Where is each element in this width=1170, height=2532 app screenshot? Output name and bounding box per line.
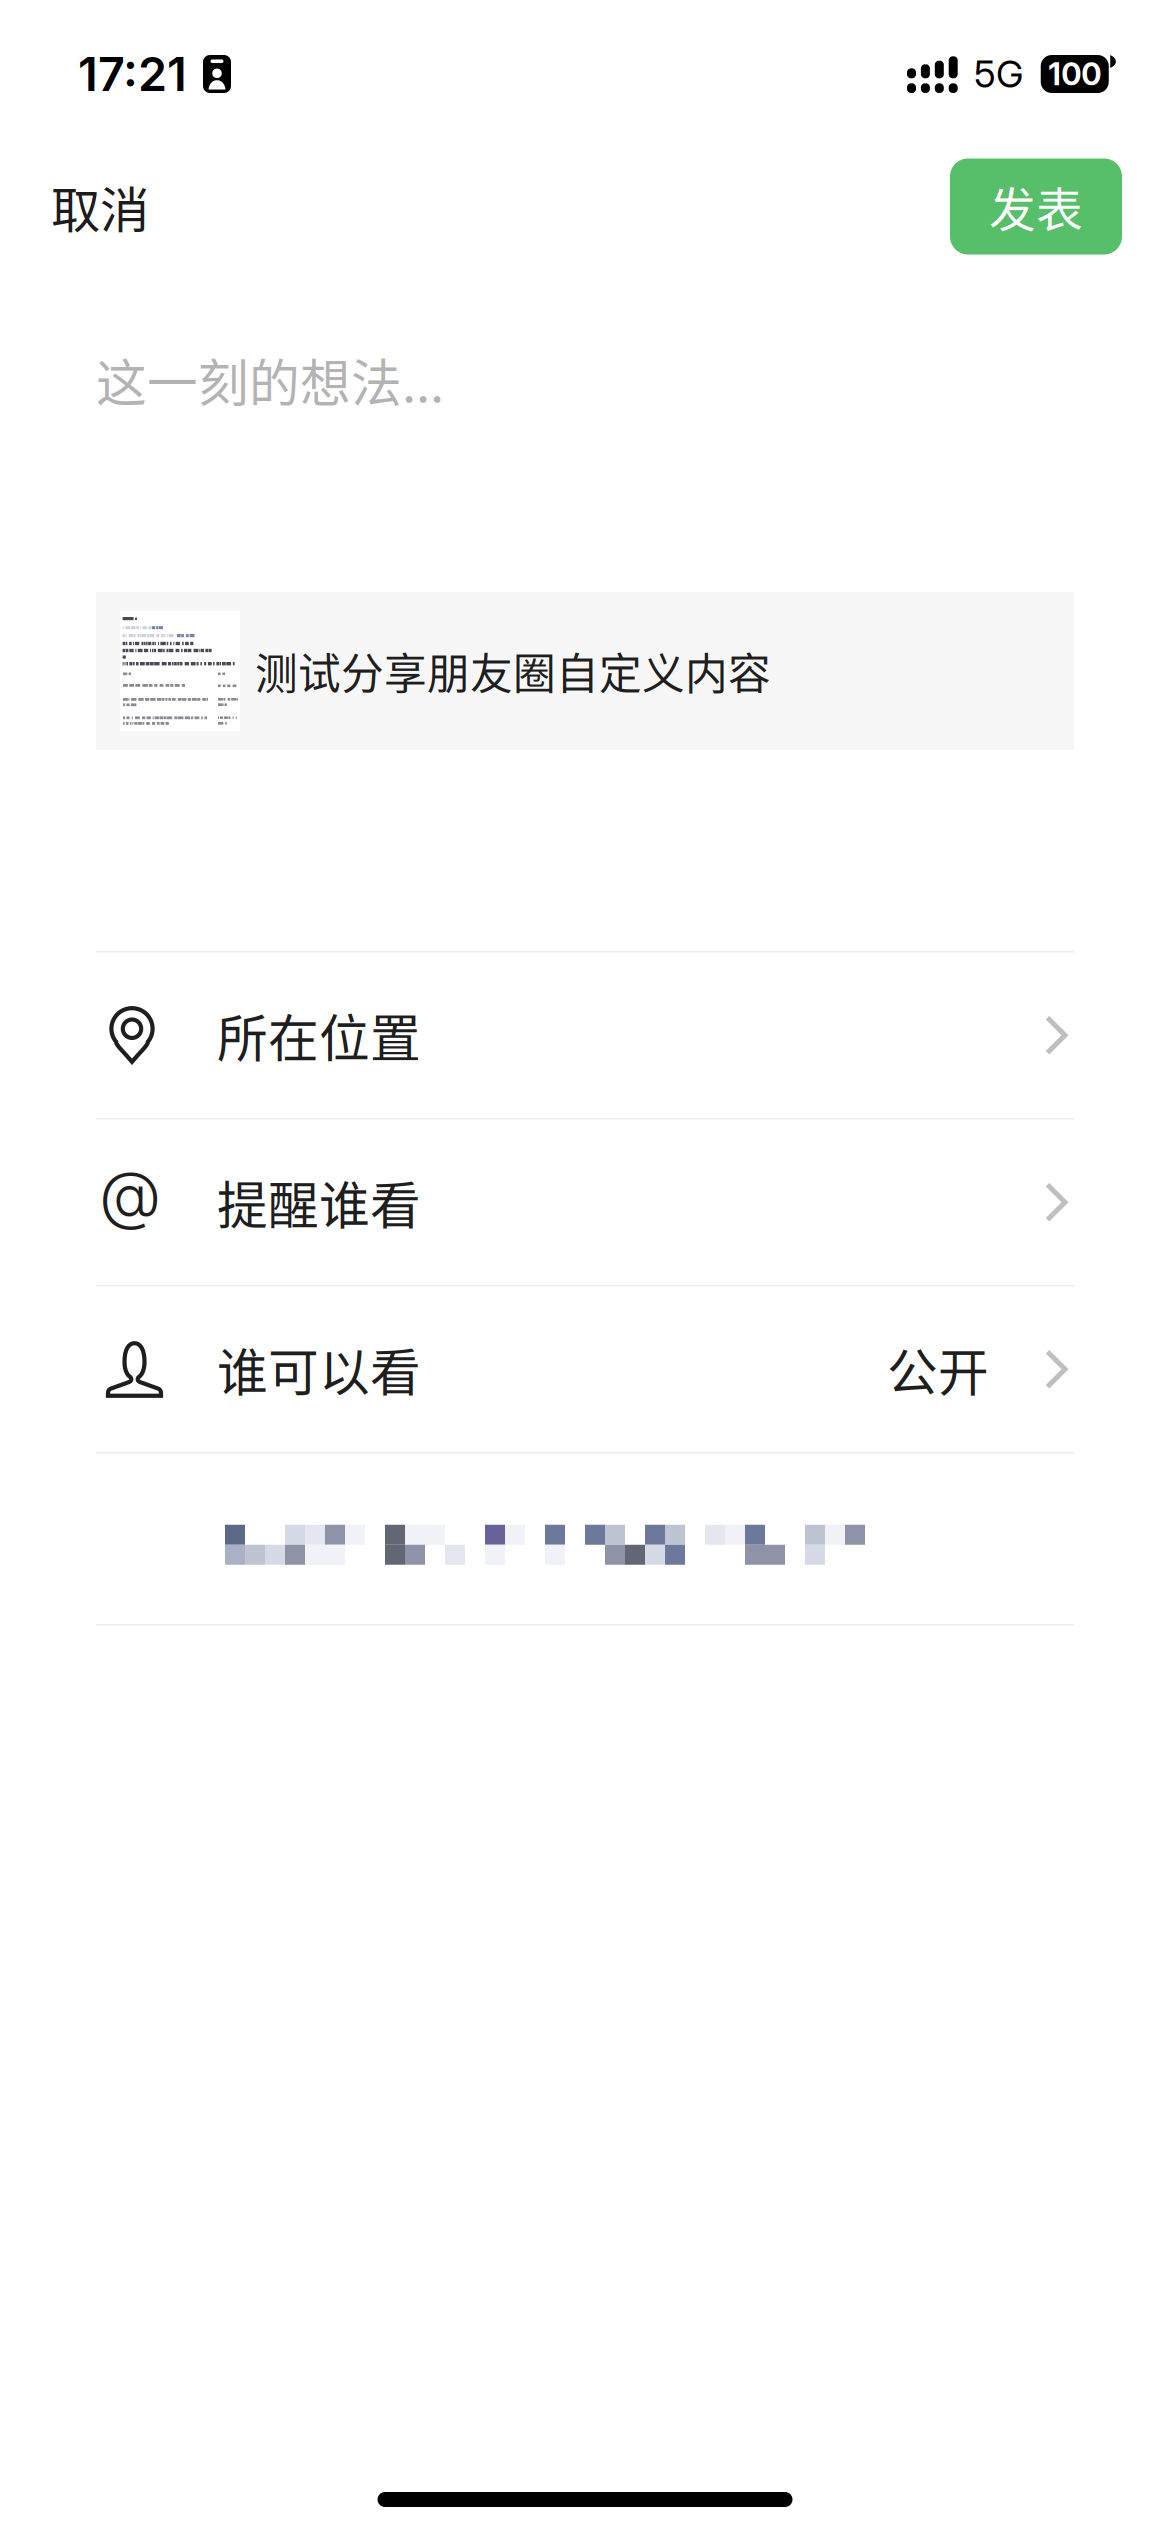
staticText: 100 [1048,55,1101,92]
button[interactable]: @ [0,1119,1170,1285]
button[interactable]: 所在位置 [0,952,1170,1118]
button[interactable]: 谁可以看 [0,1286,1170,1452]
button[interactable]: 这一刻的想法... [0,265,1170,495]
staticText: @ [99,1155,161,1233]
button[interactable]: 发表 [950,158,1122,254]
button[interactable]: 同步的动态 [0,1453,1170,1624]
staticText: 这一刻的想法... [96,343,444,417]
button[interactable]: 取消 [0,148,189,265]
staticText: 所在位置 [217,999,421,1072]
staticText: 测试分享朋友圈自定义内容 [255,640,771,702]
staticText: 17:21 [78,46,187,102]
staticText: 取消 [51,171,149,242]
staticText: 公开 [887,1333,989,1406]
button[interactable]: 测试分享朋友圈自定义内容 [96,592,1074,750]
staticText: 谁可以看 [217,1333,421,1406]
staticText: 发表 [989,173,1083,240]
staticText: 提醒谁看 [217,1166,421,1239]
staticText: 5G [974,51,1023,97]
